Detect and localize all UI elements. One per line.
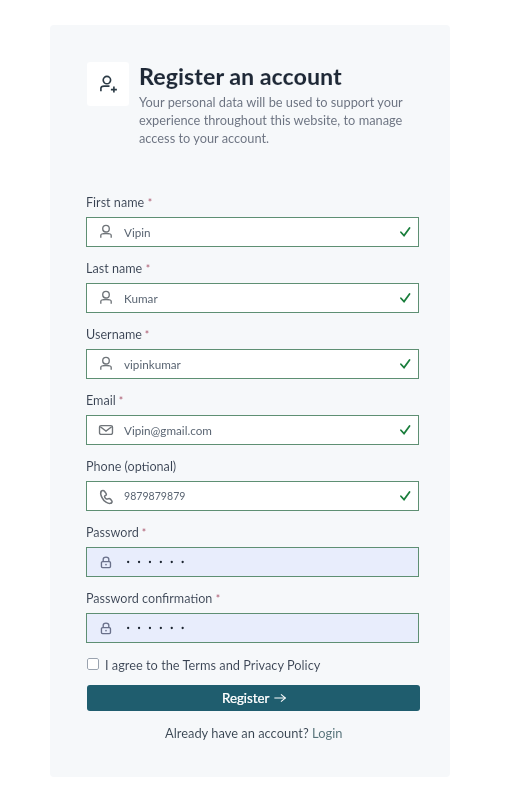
button[interactable]: I agree to the Terms and Privacy Policy (86, 653, 321, 675)
staticText: 9879879879 (124, 490, 186, 503)
button[interactable]: Vipin@gmail.com (86, 415, 419, 445)
staticText: Last name (86, 261, 143, 276)
staticText: Kumar (124, 291, 158, 305)
staticText: Already have an account? (165, 725, 309, 740)
staticText: Email (86, 393, 116, 408)
staticText: I agree to the Terms and Privacy Policy (105, 657, 321, 672)
button[interactable] (86, 613, 419, 643)
staticText: Password (86, 525, 139, 540)
staticText: * (139, 527, 147, 540)
button[interactable]: vipinkumar (86, 349, 419, 379)
staticText: First name (86, 195, 145, 210)
button[interactable]: Kumar (86, 283, 419, 313)
staticText: * (116, 395, 124, 408)
button[interactable] (86, 547, 419, 577)
staticText: Vipin@gmail.com (124, 423, 212, 437)
button[interactable]: Login (312, 725, 343, 740)
staticText: Register an account (139, 62, 342, 90)
staticText: Username (86, 327, 142, 342)
staticText: * (213, 593, 221, 606)
staticText: Your personal data will be used to suppo… (139, 94, 414, 146)
staticText: * (142, 329, 150, 342)
staticText: * (143, 263, 151, 276)
button[interactable]: Register (87, 685, 420, 711)
staticText: Password confirmation (86, 591, 213, 606)
staticText: Vipin (124, 225, 151, 239)
button[interactable]: Vipin (86, 217, 419, 247)
button[interactable]: 9879879879 (86, 481, 419, 511)
staticText: vipinkumar (124, 357, 181, 371)
staticText: * (145, 197, 153, 210)
staticText: Phone (optional) (86, 459, 177, 474)
staticText: Register (222, 690, 270, 706)
